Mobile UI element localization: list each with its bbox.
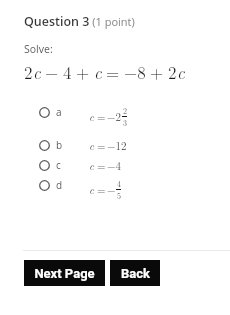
button[interactable]: Back [110, 260, 160, 286]
staticText: −4 [107, 158, 122, 174]
staticText: + [150, 60, 164, 84]
staticText: c [89, 138, 95, 154]
staticText: − [45, 60, 59, 84]
staticText: Next Page [34, 266, 95, 281]
staticText: c [177, 60, 185, 84]
staticText: c [56, 158, 61, 172]
staticText: d [56, 178, 63, 192]
staticText: 4 [63, 60, 72, 84]
staticText: Question 3 (1 point) [24, 13, 135, 30]
staticText: = [97, 109, 106, 125]
staticText: −12 [107, 138, 127, 154]
button[interactable]: Next Page [24, 260, 105, 286]
staticText: −8 [124, 60, 146, 84]
button[interactable]: c [0, 155, 230, 315]
staticText: 2 [24, 60, 33, 84]
staticText: c [89, 109, 95, 125]
staticText: + [76, 60, 90, 84]
button[interactable]: a [0, 102, 230, 315]
staticText: 2 [123, 105, 127, 116]
staticText: = [97, 158, 106, 174]
staticText: c [94, 60, 102, 84]
staticText: b [56, 138, 63, 152]
staticText: Back [121, 266, 150, 281]
staticText: c [33, 60, 41, 84]
staticText: = [97, 138, 106, 154]
staticText: 3 [123, 117, 127, 128]
staticText: c [89, 182, 95, 198]
staticText: 5 [117, 190, 121, 201]
staticText: c [89, 158, 95, 174]
staticText: Solve: [24, 42, 53, 56]
button[interactable]: b [0, 135, 230, 315]
staticText: − [107, 182, 116, 198]
staticText: 2 [168, 60, 177, 84]
staticText: 4 [117, 178, 121, 189]
staticText: a [56, 105, 62, 119]
button[interactable]: d [0, 175, 230, 315]
staticText: −2 [107, 109, 122, 125]
staticText: = [97, 182, 106, 198]
staticText: = [106, 60, 120, 84]
